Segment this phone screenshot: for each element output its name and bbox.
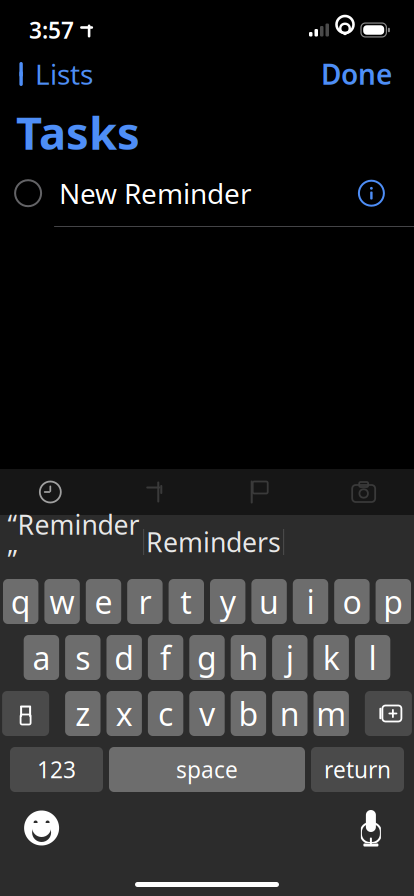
staticText: y [220, 580, 236, 623]
button[interactable]: r [127, 579, 163, 624]
staticText: r [138, 580, 151, 623]
staticText: e [94, 580, 112, 623]
button[interactable]: z [65, 691, 100, 736]
staticText: a [32, 636, 50, 679]
button[interactable]: t [169, 579, 204, 624]
button[interactable]: y [210, 579, 245, 624]
staticText: n [280, 692, 300, 735]
button[interactable]: g [189, 635, 225, 680]
staticText: g [197, 636, 217, 679]
staticText: 123 [37, 754, 76, 784]
button[interactable]: Shift [2, 691, 49, 736]
staticText: v [199, 692, 215, 735]
button[interactable]: u [251, 579, 287, 624]
button[interactable]: Details [349, 171, 394, 216]
button[interactable]: a [24, 635, 59, 680]
button[interactable]: Remind me at a location [102, 469, 207, 515]
button[interactable]: v [189, 691, 225, 736]
staticText: m [316, 692, 346, 735]
staticText: x [116, 692, 133, 735]
staticText: l [369, 636, 377, 679]
staticText: p [383, 580, 403, 623]
button[interactable]: return [311, 747, 404, 792]
staticText: t [180, 580, 192, 623]
staticText: space [176, 754, 238, 784]
button[interactable]: i [293, 579, 328, 624]
staticText: f [160, 636, 171, 679]
button[interactable]: m [313, 691, 349, 736]
staticText: 3:57 [29, 15, 74, 45]
staticText: o [342, 580, 361, 623]
button[interactable]: l [355, 635, 390, 680]
button[interactable]: d [106, 635, 142, 680]
staticText: h [238, 636, 258, 679]
button[interactable]: c [148, 691, 183, 736]
button[interactable]: Lists [4, 47, 105, 101]
button[interactable]: 123 [10, 747, 103, 792]
button[interactable]: w [44, 579, 80, 624]
button[interactable]: b [231, 691, 266, 736]
button[interactable]: Dictate [342, 794, 400, 862]
button[interactable]: Delete [365, 691, 412, 736]
button[interactable]: q [3, 579, 38, 624]
staticText: Done [321, 55, 392, 93]
button[interactable]: f [148, 635, 183, 680]
staticText: b [238, 692, 258, 735]
button[interactable]: s [65, 635, 100, 680]
staticText: Reminders [146, 524, 281, 560]
staticText: return [324, 754, 391, 784]
button[interactable]: Reminders [144, 518, 283, 566]
button[interactable]: Complete reminder [7, 172, 49, 214]
staticText: q [11, 580, 31, 623]
staticText: i [306, 580, 314, 623]
staticText: z [75, 692, 90, 735]
staticText: j [286, 636, 294, 679]
staticText: c [158, 692, 173, 735]
button[interactable]: Remind me at a time [0, 469, 103, 515]
button[interactable]: o [334, 579, 370, 624]
button[interactable]: x [106, 691, 142, 736]
staticText: “Reminder” [8, 507, 140, 577]
staticText: New Reminder [59, 175, 252, 212]
button[interactable]: space [109, 747, 305, 792]
staticText: Lists [35, 55, 93, 93]
button[interactable]: e [86, 579, 121, 624]
button[interactable]: p [376, 579, 411, 624]
button[interactable]: k [313, 635, 349, 680]
button[interactable]: h [231, 635, 266, 680]
button[interactable]: Emoji [10, 796, 73, 859]
staticText: d [114, 636, 134, 679]
staticText: k [323, 636, 340, 679]
staticText: s [75, 636, 90, 679]
button[interactable]: j [272, 635, 307, 680]
button[interactable]: “Reminder” [4, 518, 143, 566]
button[interactable]: Add photo [311, 469, 414, 515]
button[interactable]: Flag [207, 469, 311, 515]
button[interactable]: n [272, 691, 307, 736]
staticText: w [50, 580, 75, 623]
staticText: Tasks [16, 102, 140, 162]
button[interactable]: Done [305, 47, 408, 101]
staticText: u [259, 580, 279, 623]
